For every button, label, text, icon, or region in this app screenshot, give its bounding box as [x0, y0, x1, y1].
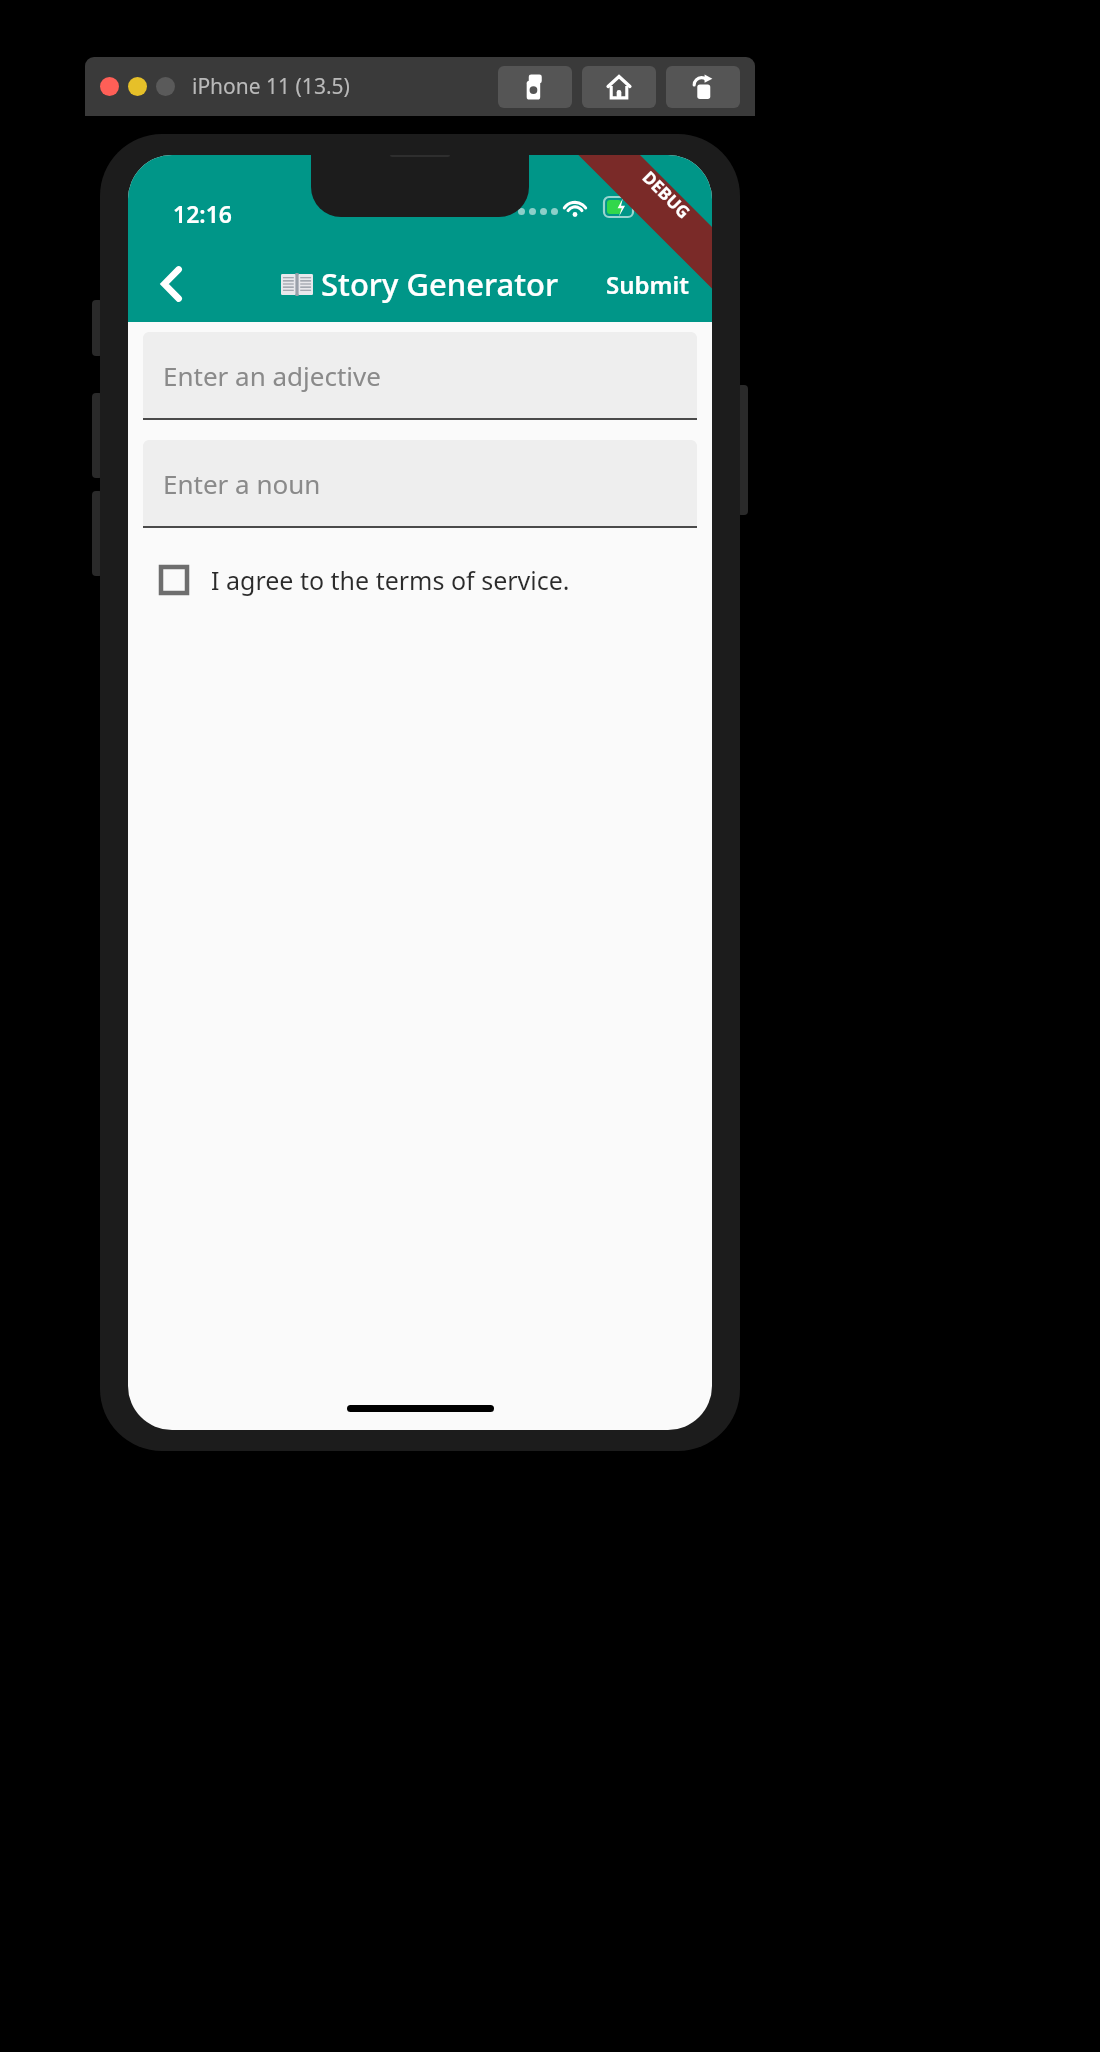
button[interactable]: Window control — [100, 77, 119, 96]
button[interactable]: Window control — [128, 77, 147, 96]
button[interactable]: Share — [666, 66, 740, 108]
button[interactable]: Screenshot — [498, 66, 572, 108]
button[interactable]: Enter a noun — [143, 440, 697, 528]
staticText: Submit — [606, 268, 690, 301]
button[interactable]: Submit — [584, 254, 712, 315]
staticText: I agree to the terms of service. — [211, 563, 570, 597]
button[interactable]: I agree to the terms of service. — [143, 553, 697, 607]
staticText: Story Generator — [321, 263, 559, 305]
staticText: DEBUG — [637, 165, 695, 223]
staticText: 12:16 — [173, 198, 232, 229]
staticText: iPhone 11 (13.5) — [192, 72, 350, 101]
staticText: Enter a noun — [163, 466, 321, 501]
button[interactable]: Window control — [156, 77, 175, 96]
button[interactable]: Enter an adjective — [143, 332, 697, 420]
button[interactable]: Back — [146, 258, 198, 310]
button[interactable]: Home — [582, 66, 656, 108]
staticText: Enter an adjective — [163, 358, 381, 393]
